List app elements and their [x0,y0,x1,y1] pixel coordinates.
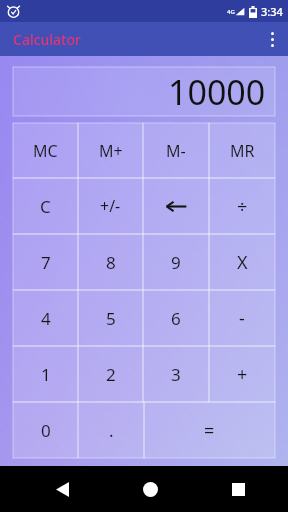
staticText: . [109,419,114,442]
button[interactable]: Multiply [209,234,275,290]
staticText: 7 [41,251,51,274]
staticText: Calculator [13,30,81,49]
button[interactable]: M+ [78,123,143,178]
staticText: = [204,418,215,443]
button[interactable]: 6 [143,290,209,346]
button[interactable]: Plus [209,346,275,402]
staticText: 1 [41,363,51,386]
button[interactable]: 3 [143,346,209,402]
staticText: 0 [41,419,51,442]
staticText: 9 [171,251,181,274]
staticText: +/- [100,195,121,217]
staticText: 4 [41,307,51,330]
button[interactable]: Equals [144,402,275,458]
staticText: 6 [171,307,181,330]
button[interactable]: 1 [13,346,78,402]
button[interactable]: 4 [13,290,78,346]
button[interactable]: MC [13,123,78,178]
button[interactable]: 0 [13,402,78,458]
staticText: ÷ [237,194,248,219]
button[interactable]: M- [143,123,209,178]
staticText: 2 [106,363,116,386]
button[interactable]: Back [44,471,80,507]
button[interactable]: +/- [78,178,143,234]
staticText: C [40,195,51,218]
button[interactable]: 7 [13,234,78,290]
staticText: 3 [171,363,181,386]
button[interactable]: MR [209,123,275,178]
staticText: X [237,250,248,275]
staticText: 5 [106,307,116,330]
button[interactable]: . [78,402,144,458]
staticText: 8 [106,251,116,274]
staticText: - [239,306,245,331]
button[interactable]: 5 [78,290,143,346]
staticText: M+ [99,140,123,162]
button[interactable]: 9 [143,234,209,290]
button[interactable]: Recent apps [220,471,256,507]
button[interactable]: 8 [78,234,143,290]
staticText: 3:34 [261,4,283,19]
button[interactable]: Minus [209,290,275,346]
staticText: MC [33,140,58,162]
button[interactable]: 2 [78,346,143,402]
button[interactable]: Divide [209,178,275,234]
staticText: + [237,362,248,387]
staticText: M- [166,140,186,162]
button[interactable]: Backspace [143,178,209,234]
button[interactable]: Home [132,471,168,507]
button[interactable]: More options [256,23,288,55]
staticText: 10000 [168,69,266,115]
button[interactable]: C [13,178,78,234]
staticText: MR [230,140,255,162]
staticText: 4G [227,8,235,16]
